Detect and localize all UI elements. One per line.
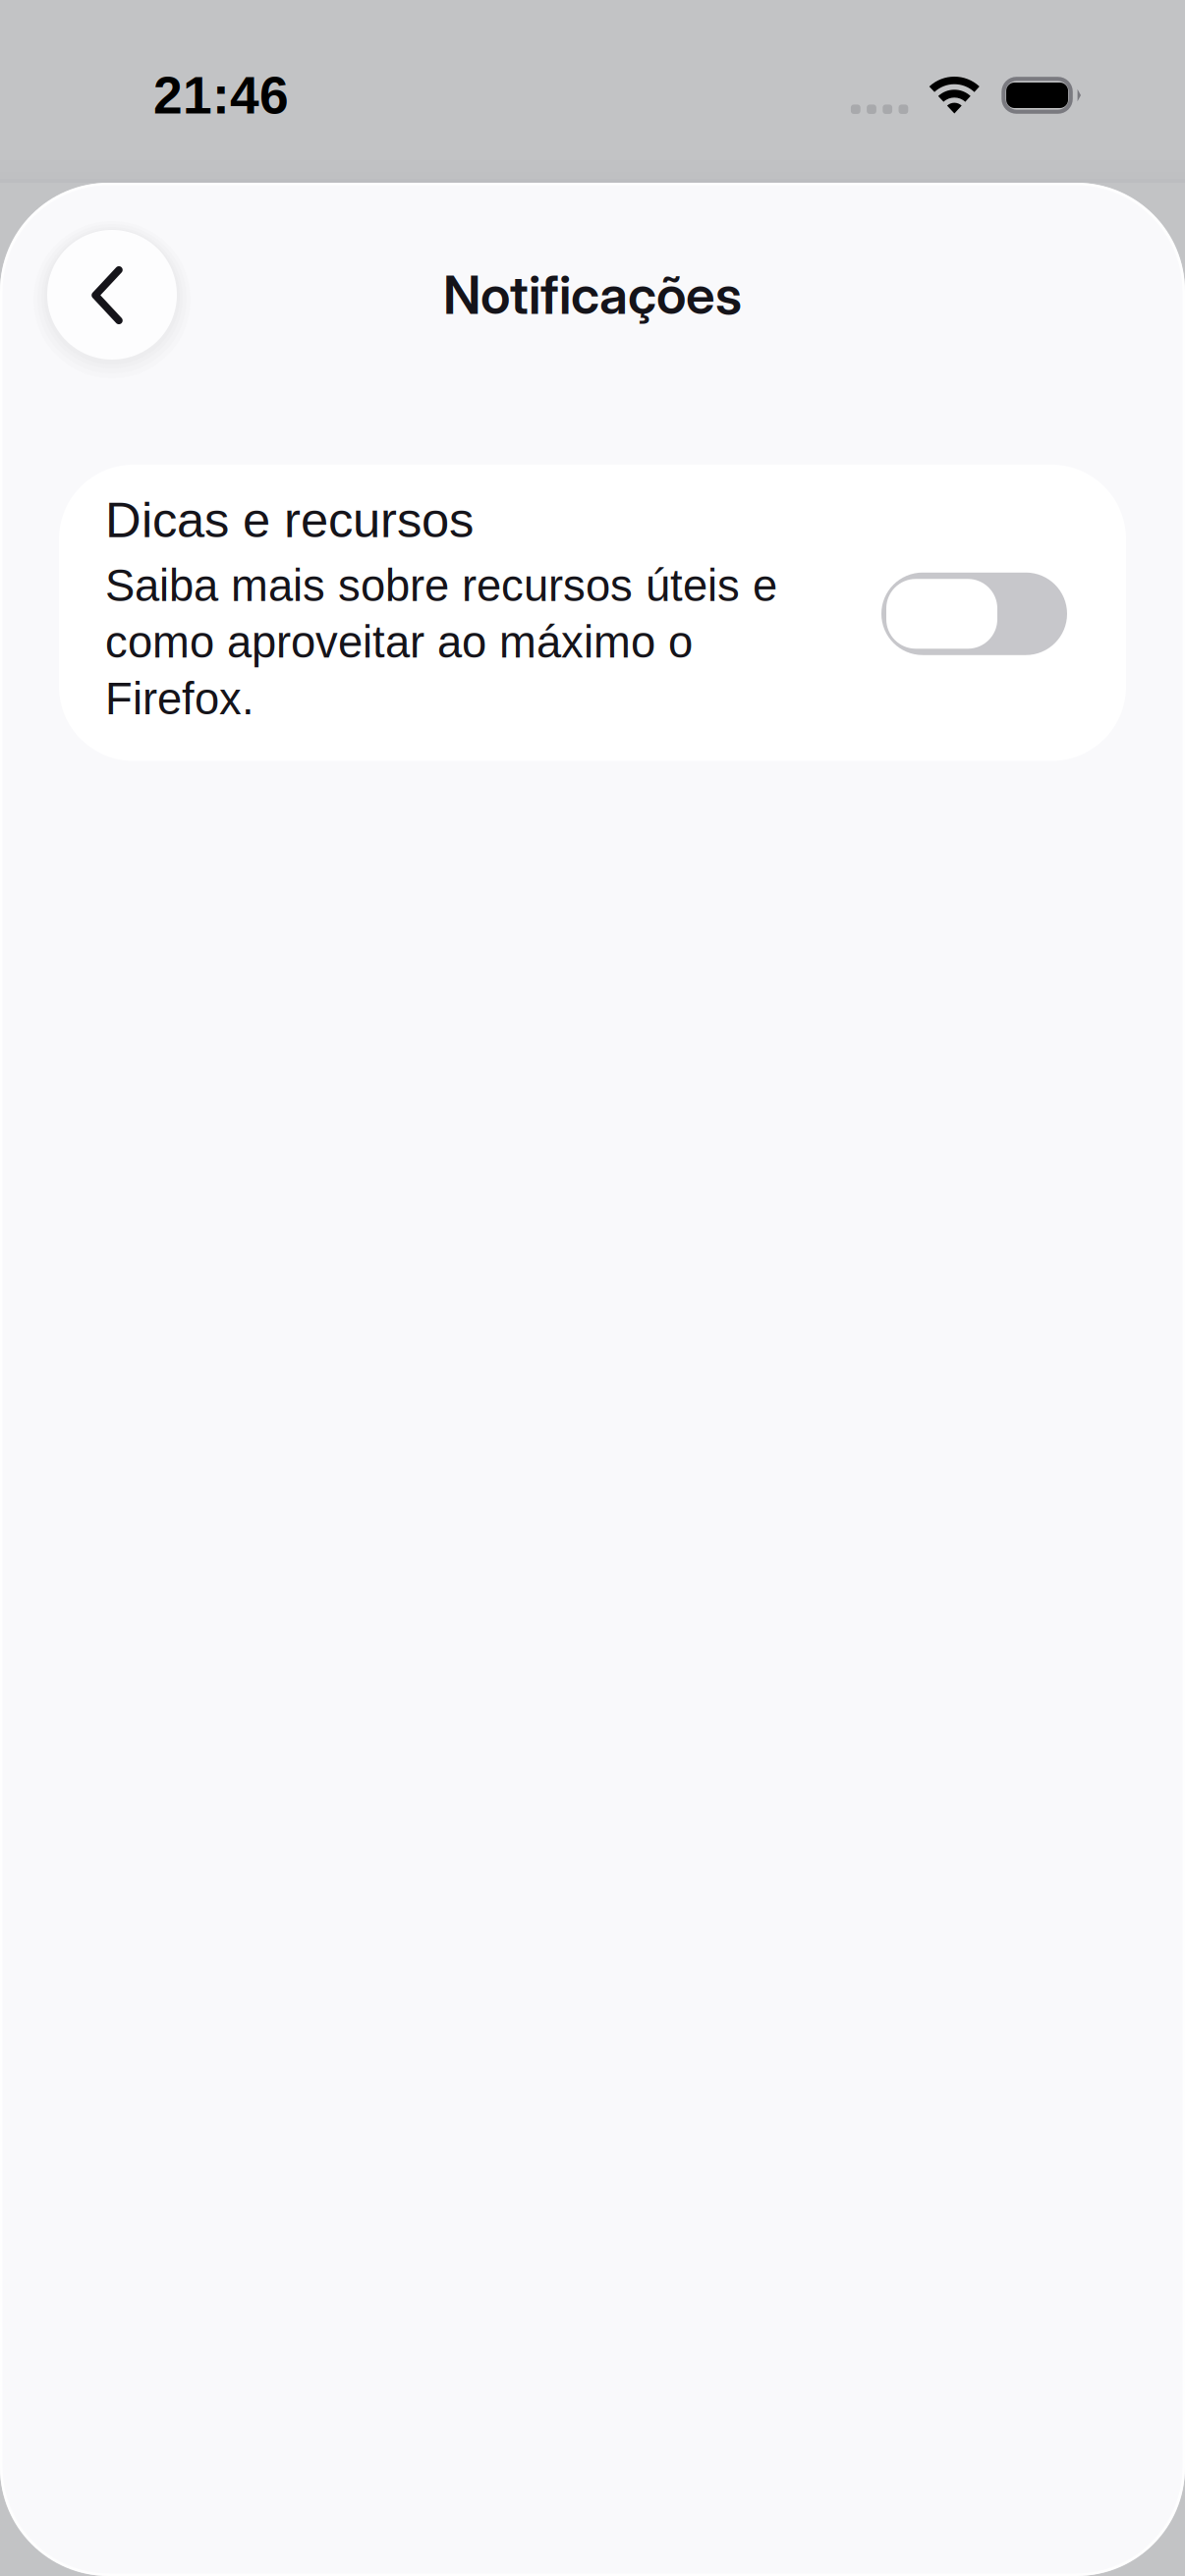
button[interactable]: Dicas e recursos (59, 465, 1126, 761)
staticText: Saiba mais sobre recursos úteis e como a… (105, 561, 777, 724)
staticText: 21:46 (153, 66, 289, 125)
button[interactable]: Voltar (33, 216, 191, 373)
staticText: Notificações (443, 263, 742, 326)
staticText: Dicas e recursos (105, 492, 474, 548)
